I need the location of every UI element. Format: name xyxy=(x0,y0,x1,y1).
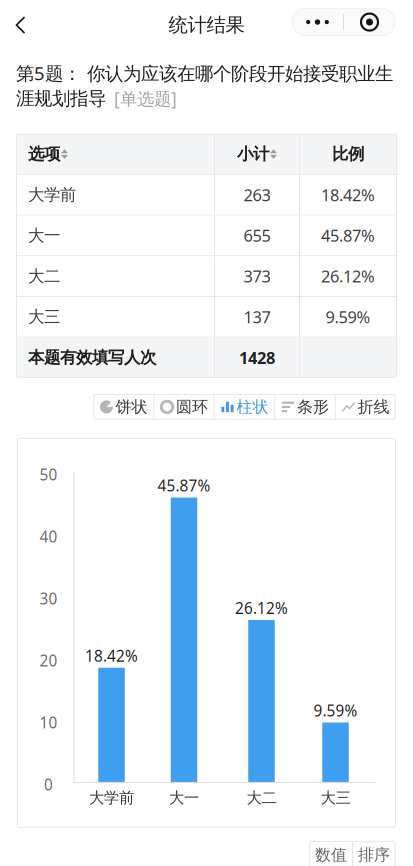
staticText: 第5题： 你认为应该在哪个阶段开始接受职业生 xyxy=(16,61,393,86)
staticText: 折线 xyxy=(357,397,389,417)
staticText: 本题有效填写人次 xyxy=(28,347,156,368)
staticText: 45.87% xyxy=(321,224,375,247)
staticText: 大学前 xyxy=(89,788,134,808)
staticText: 大三 xyxy=(28,307,60,327)
staticText: 大二 xyxy=(28,266,60,287)
staticText: 20 xyxy=(39,650,57,671)
staticText: 比例 xyxy=(332,144,364,164)
staticText: 条形 xyxy=(297,397,329,417)
staticText: 排序 xyxy=(358,845,390,865)
staticText: 50 xyxy=(39,464,57,485)
staticText: 655 xyxy=(243,224,270,247)
staticText: 圆环 xyxy=(176,397,208,417)
staticText: 373 xyxy=(243,265,270,287)
staticText: 0 xyxy=(44,774,53,795)
staticText: 18.42% xyxy=(321,184,375,206)
staticText: 小计 xyxy=(237,144,269,164)
staticText: 选项 xyxy=(28,144,60,164)
staticText: 柱状 xyxy=(236,397,268,417)
staticText: 大学前 xyxy=(28,184,76,205)
staticText: 137 xyxy=(243,306,270,328)
button[interactable]: 柱状 xyxy=(215,394,274,419)
staticText: 统计结果 xyxy=(168,13,244,37)
staticText: [单选题] xyxy=(114,87,177,110)
button[interactable]: 条形 xyxy=(275,394,335,419)
staticText: 涯规划指导 xyxy=(16,87,106,110)
staticText: 大二 xyxy=(246,788,276,808)
button[interactable]: 饼状 xyxy=(94,394,153,419)
staticText: 9.59% xyxy=(325,306,370,328)
staticText: 10 xyxy=(39,712,57,733)
button[interactable]: More xyxy=(292,9,343,36)
staticText: 26.12% xyxy=(321,265,375,287)
staticText: 大三 xyxy=(320,788,350,808)
staticText: 18.42% xyxy=(85,645,138,666)
staticText: 45.87% xyxy=(157,475,210,496)
button[interactable]: 排序 xyxy=(353,841,395,866)
button[interactable]: 圆环 xyxy=(154,394,214,419)
staticText: 30 xyxy=(39,588,57,609)
staticText: 9.59% xyxy=(313,700,357,721)
button[interactable]: Close xyxy=(344,9,395,36)
button[interactable]: Back xyxy=(0,5,46,40)
staticText: 大一 xyxy=(169,788,199,808)
staticText: 大一 xyxy=(28,225,60,246)
staticText: 数值 xyxy=(315,845,347,865)
button[interactable]: 折线 xyxy=(336,394,395,419)
staticText: 26.12% xyxy=(235,597,288,618)
staticText: 1428 xyxy=(239,346,275,369)
staticText: 饼状 xyxy=(115,397,147,417)
staticText: 40 xyxy=(39,526,57,547)
button[interactable]: 数值 xyxy=(310,841,352,866)
staticText: 263 xyxy=(243,184,270,206)
